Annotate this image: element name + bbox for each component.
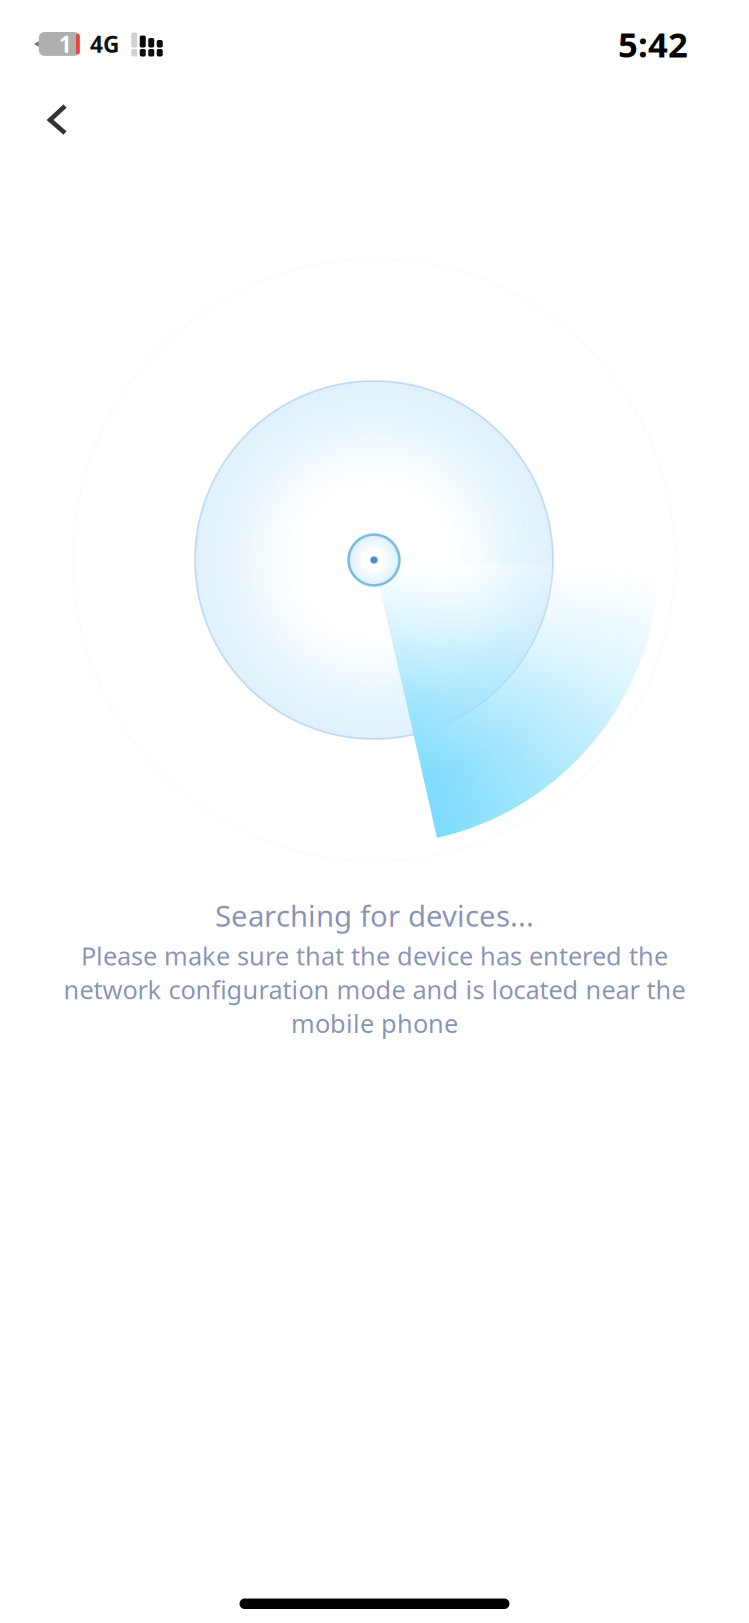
staticText: 4G <box>90 29 119 59</box>
staticText: mobile phone <box>291 1006 458 1040</box>
staticText: network configuration mode and is locate… <box>63 973 685 1006</box>
button[interactable]: Back <box>32 93 96 141</box>
staticText: 1 <box>59 29 72 59</box>
staticText: 5:42 <box>618 21 688 67</box>
staticText: Searching for devices... <box>215 896 534 935</box>
staticText: Please make sure that the device has ent… <box>81 939 668 973</box>
